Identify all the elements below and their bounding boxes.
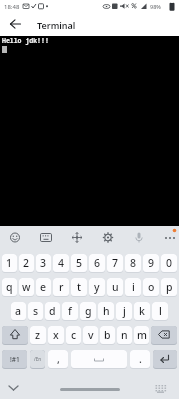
staticText: , — [57, 352, 60, 366]
button[interactable]: 5 — [71, 254, 87, 273]
staticText: k — [139, 304, 145, 318]
button[interactable] — [158, 226, 179, 251]
button[interactable] — [96, 226, 120, 251]
staticText: 9 — [148, 256, 155, 270]
button[interactable]: g — [80, 302, 96, 321]
staticText: . — [139, 352, 142, 366]
button[interactable]: j — [116, 302, 132, 321]
button[interactable]: 9 — [143, 254, 159, 273]
staticText: u — [112, 280, 119, 294]
staticText: Hello jdk!!! — [2, 36, 49, 45]
button[interactable] — [151, 326, 177, 345]
button[interactable]: v — [83, 326, 98, 345]
button[interactable]: q — [2, 278, 17, 297]
button[interactable]: b — [100, 326, 115, 345]
button[interactable] — [0, 13, 32, 36]
staticText: x — [53, 328, 59, 342]
button[interactable] — [71, 350, 127, 369]
button[interactable]: 1 — [2, 254, 17, 273]
button[interactable]: t — [71, 278, 87, 297]
button[interactable]: e — [36, 278, 51, 297]
staticText: p — [166, 280, 173, 294]
staticText: 2 — [23, 256, 30, 270]
button[interactable]: i — [125, 278, 141, 297]
staticText: o — [148, 280, 155, 294]
staticText: 5 — [76, 256, 83, 270]
staticText: 3 — [40, 256, 47, 270]
button[interactable]: s — [28, 302, 43, 321]
button[interactable]: w — [19, 278, 34, 297]
button[interactable] — [3, 226, 27, 251]
staticText: v — [88, 328, 94, 342]
button[interactable]: 2 — [19, 254, 34, 273]
staticText: 98% — [150, 3, 161, 10]
button[interactable]: 4 — [53, 254, 69, 273]
staticText: j — [123, 304, 126, 318]
staticText: /En — [34, 356, 42, 362]
staticText: w — [22, 280, 31, 294]
button[interactable]: u — [107, 278, 123, 297]
staticText: 4 — [58, 256, 65, 270]
button[interactable] — [2, 326, 28, 345]
staticText: d — [49, 304, 56, 318]
staticText: m — [137, 328, 147, 342]
staticText: 7 — [112, 256, 119, 270]
staticText: 6 — [94, 256, 101, 270]
staticText: c — [71, 328, 77, 342]
button[interactable]: d — [45, 302, 60, 321]
button[interactable] — [127, 226, 151, 251]
button[interactable]: !#1 — [2, 350, 27, 369]
button[interactable]: 6 — [89, 254, 105, 273]
button[interactable]: 7 — [107, 254, 123, 273]
staticText: e — [40, 280, 47, 294]
button[interactable]: x — [48, 326, 64, 345]
staticText: l — [159, 304, 162, 318]
staticText: i — [132, 280, 135, 294]
button[interactable]: r — [53, 278, 69, 297]
button[interactable]: n — [117, 326, 132, 345]
staticText: Terminal — [37, 19, 76, 31]
button[interactable]: a — [11, 302, 26, 321]
button[interactable] — [0, 373, 28, 399]
button[interactable]: y — [89, 278, 105, 297]
staticText: f — [68, 304, 72, 318]
button[interactable] — [60, 388, 120, 391]
button[interactable]: h — [98, 302, 114, 321]
button[interactable]: 3 — [36, 254, 51, 273]
button[interactable] — [34, 226, 58, 251]
button[interactable]: k — [134, 302, 150, 321]
staticText: z — [35, 328, 41, 342]
button[interactable]: z — [30, 326, 46, 345]
button[interactable]: c — [66, 326, 81, 345]
button[interactable] — [151, 373, 179, 399]
staticText: 0 — [166, 256, 173, 270]
button[interactable]: . — [130, 350, 150, 369]
button[interactable]: , — [48, 350, 68, 369]
button[interactable]: 0 — [161, 254, 177, 273]
button[interactable]: p — [161, 278, 177, 297]
staticText: b — [104, 328, 111, 342]
staticText: h — [103, 304, 110, 318]
staticText: n — [121, 328, 128, 342]
staticText: t — [77, 280, 82, 294]
staticText: g — [85, 304, 92, 318]
button[interactable]: f — [62, 302, 78, 321]
button[interactable] — [153, 350, 177, 369]
staticText: 18:48 — [4, 3, 20, 11]
staticText: s — [33, 304, 39, 318]
staticText: y — [94, 280, 100, 294]
button[interactable]: o — [143, 278, 159, 297]
button[interactable]: /En — [30, 350, 45, 369]
staticText: a — [15, 304, 22, 318]
button[interactable] — [65, 226, 89, 251]
staticText: q — [6, 280, 13, 294]
staticText: 1 — [6, 256, 13, 270]
button[interactable]: Hello jdk!!! — [0, 36, 179, 226]
staticText: 8 — [130, 256, 137, 270]
staticText: r — [59, 280, 64, 294]
button[interactable]: m — [134, 326, 149, 345]
staticText: !#1 — [10, 355, 20, 364]
button[interactable]: l — [152, 302, 168, 321]
button[interactable]: 8 — [125, 254, 141, 273]
